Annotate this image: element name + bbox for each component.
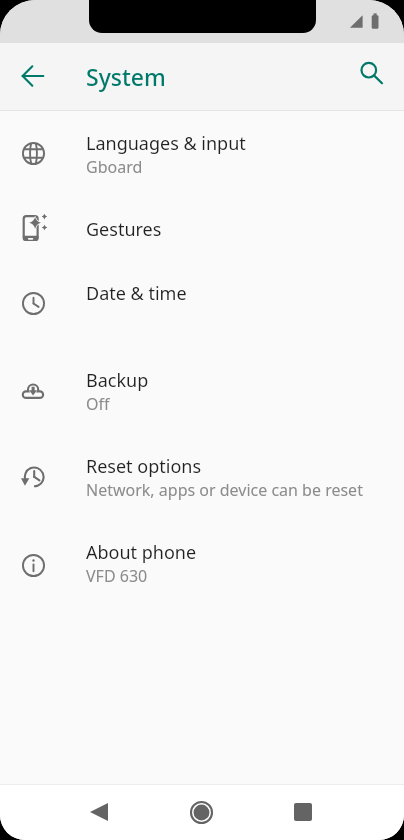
staticText: Languages & input — [86, 131, 246, 156]
button[interactable]: Languages & input — [0, 111, 404, 179]
button[interactable]: Recent apps — [273, 784, 333, 840]
button[interactable]: Date & time — [0, 254, 404, 329]
staticText: System — [86, 61, 166, 92]
staticText: Gboard — [86, 156, 143, 178]
staticText: Off — [86, 393, 110, 415]
staticText: About phone — [86, 540, 197, 565]
button[interactable]: Back — [8, 51, 58, 101]
staticText: Reset options — [86, 454, 202, 479]
staticText: Date & time — [86, 281, 187, 306]
staticText: Gestures — [86, 217, 162, 242]
button[interactable]: Back — [69, 784, 129, 840]
button[interactable]: Search — [351, 52, 393, 94]
button[interactable]: Home — [171, 784, 231, 840]
staticText: Network, apps or device can be reset — [86, 479, 363, 501]
button[interactable]: Gestures — [0, 179, 404, 254]
button[interactable]: About phone — [0, 502, 404, 620]
button[interactable]: Backup — [0, 330, 404, 416]
staticText: VFD 630 — [86, 565, 148, 587]
staticText: Backup — [86, 368, 149, 393]
button[interactable]: Reset options — [0, 416, 404, 502]
